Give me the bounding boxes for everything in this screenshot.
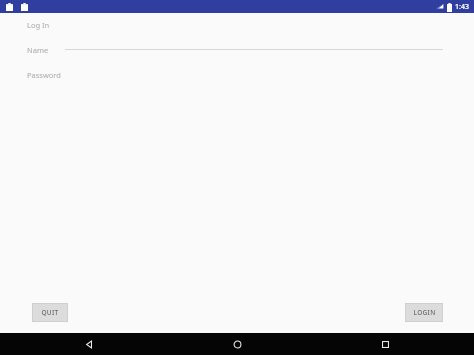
staticText: LOGIN <box>413 308 436 317</box>
staticText: Name <box>27 45 49 55</box>
staticText: Password <box>27 70 61 80</box>
button[interactable]: Home <box>179 333 296 355</box>
button[interactable]: Back <box>0 333 179 355</box>
staticText: Log In <box>27 20 50 30</box>
staticText: QUIT <box>41 308 59 317</box>
button[interactable]: LOGIN <box>406 304 442 321</box>
staticText: 1:43 <box>455 2 469 12</box>
button[interactable]: QUIT <box>33 304 67 321</box>
button[interactable]: Recent apps <box>296 333 474 355</box>
